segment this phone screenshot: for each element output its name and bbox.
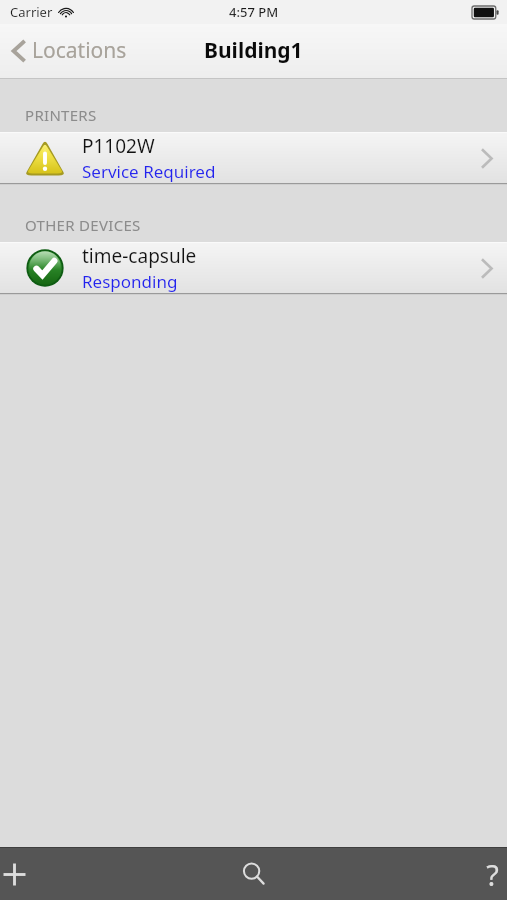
button[interactable]: Add [0, 848, 169, 900]
staticText: Responding [82, 270, 178, 293]
button[interactable]: Locations [0, 30, 139, 71]
button[interactable]: Help [338, 848, 507, 900]
button[interactable]: Search [169, 848, 338, 900]
staticText: ? [486, 855, 499, 894]
button[interactable]: time-capsule [0, 243, 507, 293]
staticText: Locations [32, 36, 127, 65]
staticText: Carrier [10, 3, 53, 21]
staticText: PRINTERS [25, 105, 97, 125]
staticText: Service Required [82, 160, 216, 183]
staticText: OTHER DEVICES [25, 215, 141, 235]
button[interactable]: P1102W [0, 133, 507, 183]
staticText: Building1 [204, 36, 303, 65]
staticText: 4:57 PM [229, 3, 279, 21]
staticText: time-capsule [82, 243, 197, 269]
staticText: P1102W [82, 133, 155, 159]
